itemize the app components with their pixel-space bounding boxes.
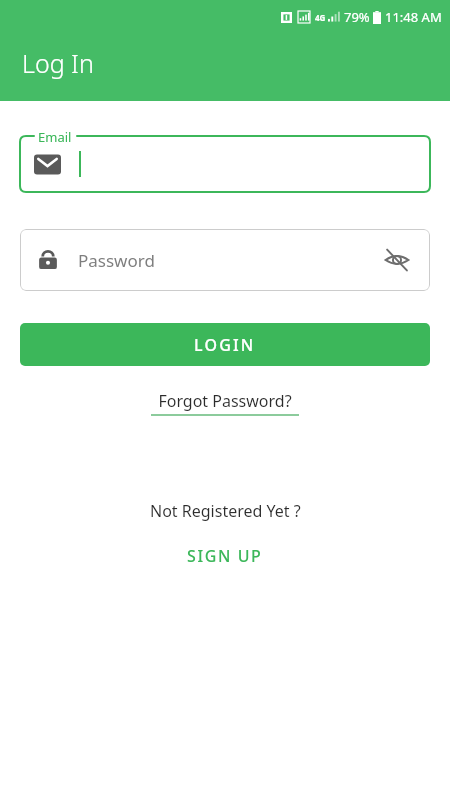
staticText: Log In <box>22 46 94 80</box>
staticText: Forgot Password? <box>158 390 292 412</box>
button[interactable]: SIGN UP <box>177 542 273 570</box>
staticText: Email <box>38 128 72 146</box>
staticText: LOGIN <box>194 334 256 356</box>
button[interactable]: Email <box>20 127 430 192</box>
staticText: 79% <box>344 8 370 26</box>
button[interactable]: Password <box>20 229 430 291</box>
button[interactable]: Show password <box>380 243 414 277</box>
staticText: SIGN UP <box>187 545 263 567</box>
button[interactable]: LOGIN <box>20 323 430 366</box>
staticText: Not Registered Yet ? <box>150 500 301 522</box>
staticText: 4G <box>315 12 326 23</box>
button[interactable]: Forgot Password? <box>147 388 303 418</box>
staticText: Password <box>78 249 155 272</box>
staticText: 11:48 AM <box>385 8 442 26</box>
